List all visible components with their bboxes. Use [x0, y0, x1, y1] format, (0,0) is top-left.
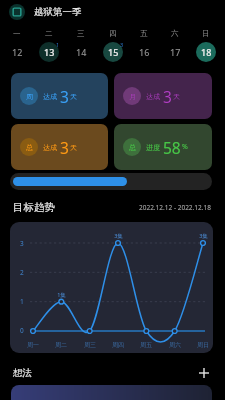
staticText: 3集 [114, 232, 123, 240]
staticText: 周二 [55, 341, 67, 349]
staticText: 14 [76, 46, 87, 58]
staticText: 日 [202, 29, 210, 38]
button[interactable]: 一 [1, 29, 33, 64]
staticText: 周五 [140, 341, 152, 349]
staticText: 18 [201, 46, 212, 58]
staticText: 1 [56, 41, 60, 48]
button[interactable]: 二 [33, 29, 65, 64]
staticText: 12 [12, 46, 23, 58]
button[interactable]: Add thought [196, 365, 212, 381]
button[interactable]: 日 [190, 29, 221, 64]
button[interactable]: 周 [11, 73, 108, 119]
staticText: 3 [20, 239, 24, 248]
staticText: 达成 [146, 92, 160, 101]
staticText: 四 [109, 29, 117, 38]
staticText: 天 [70, 143, 77, 152]
staticText: 17 [170, 46, 181, 58]
button[interactable]: 月 [114, 73, 212, 119]
staticText: 周三 [84, 341, 96, 349]
staticText: 目标趋势 [13, 201, 55, 214]
staticText: 13 [44, 46, 55, 58]
staticText: % [182, 142, 188, 152]
staticText: 58 [163, 137, 181, 158]
staticText: 总 [129, 143, 136, 152]
staticText: 16 [139, 46, 150, 58]
staticText: 月 [129, 92, 136, 101]
staticText: 1集 [57, 291, 66, 299]
button[interactable]: 六 [159, 29, 190, 64]
staticText: 15 [108, 46, 119, 58]
staticText: 1 [20, 297, 24, 306]
staticText: 越狱第一季 [34, 6, 82, 18]
staticText: 3集 [199, 232, 208, 240]
staticText: 达成 [43, 92, 57, 101]
staticText: 3 [120, 41, 124, 48]
staticText: 周日 [197, 341, 209, 349]
staticText: 3 [60, 86, 69, 107]
staticText: 3 [163, 86, 172, 107]
staticText: 周 [26, 92, 33, 101]
staticText: 二 [45, 29, 53, 38]
staticText: 周四 [112, 341, 124, 349]
staticText: 周一 [27, 341, 39, 349]
staticText: 一 [13, 29, 21, 38]
staticText: 2022.12.12 - 2022.12.18 [139, 203, 211, 212]
button[interactable]: 总 [11, 124, 108, 170]
staticText: 达成 [43, 143, 57, 152]
staticText: 周六 [169, 341, 181, 349]
button[interactable]: 五 [128, 29, 159, 64]
staticText: 0 [20, 326, 24, 335]
button[interactable]: 总 [114, 124, 212, 170]
button[interactable]: 四 [97, 29, 128, 64]
staticText: 天 [70, 92, 77, 101]
staticText: 3 [60, 137, 69, 158]
staticText: 想法 [13, 367, 32, 379]
staticText: 六 [171, 29, 179, 38]
staticText: 进度 [146, 143, 160, 152]
staticText: 三 [77, 29, 85, 38]
button[interactable]: 三 [65, 29, 97, 64]
staticText: 五 [140, 29, 148, 38]
staticText: 2 [20, 268, 24, 277]
staticText: 天 [173, 92, 180, 101]
staticText: 总 [26, 143, 33, 152]
